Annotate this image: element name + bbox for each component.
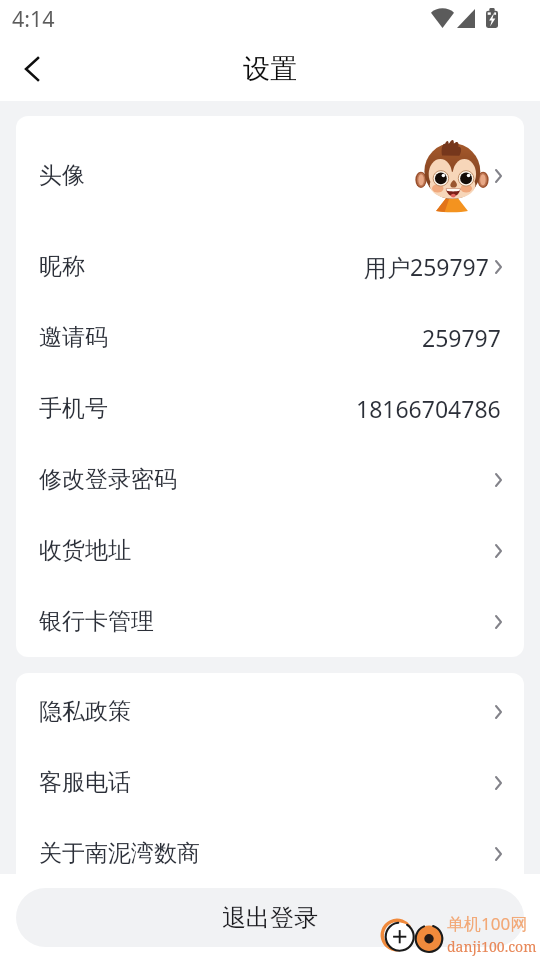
staticText: 头像 [39, 161, 85, 190]
button[interactable]: 昵称 [16, 231, 524, 302]
staticText: 用户259797 [364, 251, 489, 282]
staticText: 昵称 [39, 252, 85, 281]
button[interactable]: 隐私政策 [16, 676, 524, 747]
staticText: 单机100网 [447, 912, 528, 935]
staticText: 邀请码 [39, 323, 108, 352]
staticText: 设置 [243, 52, 297, 86]
staticText: 关于南泥湾数商 [39, 839, 200, 868]
staticText: 修改登录密码 [39, 465, 177, 494]
staticText: 银行卡管理 [39, 607, 154, 636]
staticText: 4:14 [12, 4, 55, 33]
button[interactable]: 客服电话 [16, 747, 524, 818]
staticText: 隐私政策 [39, 697, 131, 726]
button[interactable]: 手机号 [16, 373, 524, 444]
button[interactable]: 关于南泥湾数商 [16, 818, 524, 889]
button[interactable]: Back [6, 43, 57, 94]
button[interactable]: 修改登录密码 [16, 444, 524, 515]
staticText: 259797 [422, 322, 501, 353]
staticText: 收货地址 [39, 536, 131, 565]
staticText: 手机号 [39, 394, 108, 423]
button[interactable]: 邀请码 [16, 302, 524, 373]
button[interactable]: 退出登录 [16, 888, 524, 947]
button[interactable]: 银行卡管理 [16, 586, 524, 657]
button[interactable]: 头像 [16, 116, 524, 231]
staticText: 退出登录 [222, 903, 318, 933]
staticText: danji100.com [447, 937, 537, 956]
staticText: 18166704786 [356, 393, 501, 424]
button[interactable]: 收货地址 [16, 515, 524, 586]
staticText: 客服电话 [39, 768, 131, 797]
